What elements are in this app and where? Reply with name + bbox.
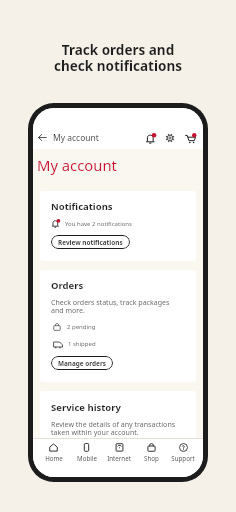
- button[interactable]: Shop: [135, 443, 167, 477]
- staticText: Orders: [51, 279, 84, 292]
- staticText: Track orders and check notifications: [54, 41, 182, 75]
- button[interactable]: Settings: [163, 131, 177, 145]
- staticText: Review the details of any transactions t…: [51, 419, 176, 437]
- staticText: Support: [171, 454, 195, 462]
- staticText: Internet: [107, 454, 131, 462]
- staticText: Notifications: [51, 200, 113, 213]
- button[interactable]: Notifications: [40, 191, 196, 261]
- button[interactable]: Support: [167, 443, 199, 477]
- staticText: Manage orders: [58, 359, 106, 368]
- button[interactable]: Manage orders: [51, 356, 113, 370]
- button[interactable]: Shopping cart: [183, 131, 197, 145]
- staticText: Home: [45, 454, 63, 462]
- button[interactable]: Internet: [103, 443, 135, 477]
- button[interactable]: Home: [37, 443, 70, 477]
- staticText: Shop: [144, 454, 159, 462]
- staticText: Service history: [51, 401, 121, 414]
- button[interactable]: Review notifications: [51, 235, 130, 249]
- staticText: Check orders status, track packages and …: [51, 297, 176, 315]
- staticText: 2 pending: [67, 323, 96, 331]
- button[interactable]: Mobile: [70, 443, 103, 477]
- staticText: My account: [53, 132, 99, 144]
- button[interactable]: Orders: [40, 270, 196, 382]
- staticText: My account: [37, 155, 117, 175]
- staticText: Review notifications: [58, 238, 123, 247]
- staticText: 1 shipped: [68, 340, 96, 348]
- button[interactable]: Notifications: [143, 131, 157, 145]
- button[interactable]: Service history: [40, 391, 196, 438]
- staticText: You have 2 notifications: [65, 220, 132, 228]
- button[interactable]: Back: [37, 132, 48, 143]
- staticText: Mobile: [77, 454, 97, 462]
